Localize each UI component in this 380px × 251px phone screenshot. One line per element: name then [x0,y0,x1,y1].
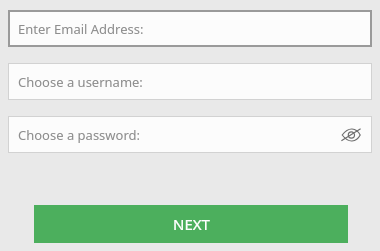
button[interactable]: NEXT [34,205,348,243]
staticText: Choose a username: [18,73,143,91]
button[interactable]: Show password [340,124,362,146]
staticText: Enter Email Address: [18,20,144,38]
button[interactable]: Enter Email Address: [8,10,372,47]
staticText: NEXT [173,214,210,234]
staticText: Choose a password: [18,126,141,144]
button[interactable]: Choose a username: [8,63,372,100]
button[interactable]: Choose a password: [8,116,372,153]
